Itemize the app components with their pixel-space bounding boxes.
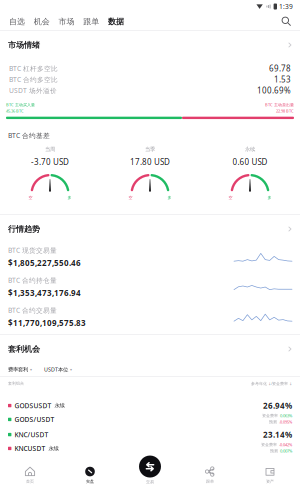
staticText: GODS/USDT (14, 415, 54, 424)
staticText: BTC 现货交易量 (8, 246, 57, 255)
staticText: BTC 主动卖出量 (265, 102, 294, 107)
button[interactable]: BTC 现货交易量 (0, 242, 300, 272)
staticText: 市场情绪 (8, 40, 40, 50)
staticText: 当周 (45, 146, 55, 152)
staticText: 实盘 (86, 479, 94, 484)
staticText: BTC 杠杆多空比 (9, 64, 58, 73)
staticText: $1,353,473,176.94 (8, 288, 81, 298)
staticText: -3.70 USD (31, 156, 69, 167)
staticText: 预测 (269, 419, 277, 424)
button[interactable]: 费率套利 (8, 363, 32, 376)
button[interactable]: 市场情绪 (0, 38, 300, 52)
staticText: 资金费率 (262, 413, 278, 418)
button[interactable]: 套利机会 (0, 342, 300, 356)
staticText: KNC/USDT (14, 430, 48, 439)
button[interactable]: 首页 (0, 462, 60, 488)
staticText: GODSUSDT (14, 401, 51, 410)
button[interactable]: 数据 (104, 13, 128, 30)
staticText: 0.063% (280, 413, 292, 418)
staticText: ▾ (70, 367, 72, 372)
button[interactable]: 资产 (240, 462, 300, 488)
staticText: 参考年化 ↓/资金费率 ↓ (251, 381, 292, 386)
button[interactable]: 跟单 (79, 13, 104, 30)
staticText: 多 (267, 195, 271, 200)
staticText: $1,805,227,550.46 (8, 258, 81, 268)
staticText: KNCUSDT (14, 444, 45, 453)
staticText: 数据 (108, 17, 124, 26)
button[interactable]: 机会 (29, 13, 54, 30)
button[interactable]: BTC 合约持仓量 (0, 272, 300, 302)
staticText: 交易 (146, 479, 154, 484)
button[interactable]: 跟单 (180, 462, 240, 488)
button[interactable]: 自选 (4, 13, 29, 30)
staticText: 空 (228, 195, 232, 200)
staticText: 多 (167, 195, 171, 200)
staticText: -0.042% (279, 442, 292, 447)
staticText: 26.94% (263, 400, 292, 411)
button[interactable]: USDT本位 (32, 363, 72, 376)
staticText: 空 (28, 195, 32, 200)
button[interactable]: BTC 合约交易量 (0, 302, 300, 332)
staticText: USDT 场外溢价 (9, 86, 57, 95)
staticText: 套利组合 (8, 381, 24, 386)
staticText: 0.007% (280, 448, 292, 454)
staticText: 22.98 BTC (276, 108, 294, 114)
staticText: BTC 合约基差 (8, 131, 50, 140)
button[interactable]: 交易 (120, 462, 180, 488)
staticText: 永续 (245, 146, 255, 152)
staticText: 跟单 (206, 479, 214, 484)
button[interactable]: Search (278, 13, 295, 30)
staticText: 当季 (145, 146, 155, 152)
staticText: 0.60 USD (232, 156, 267, 167)
staticText: 1.53 (274, 74, 291, 85)
staticText: BTC 主动买入量 (6, 102, 35, 107)
button[interactable]: 实盘 (60, 462, 120, 488)
staticText: 69.78 (269, 63, 291, 74)
staticText: 自选 (9, 17, 25, 26)
staticText: -0.095% (279, 419, 292, 425)
staticText: 费率套利 (8, 366, 28, 373)
staticText: 资金费率 (261, 442, 277, 447)
staticText: 17.80 USD (130, 156, 170, 167)
staticText: 市场 (58, 17, 74, 26)
staticText: 1:39 (279, 2, 293, 11)
staticText: 空 (128, 195, 132, 200)
staticText: 永续 (48, 445, 58, 452)
staticText: 多 (67, 195, 71, 200)
button[interactable]: 市场 (54, 13, 79, 30)
staticText: 23.14% (263, 429, 292, 440)
staticText: 行情趋势 (8, 224, 40, 234)
button[interactable]: KNC/USDT (0, 427, 300, 456)
staticText: 45.36 BTC (6, 108, 24, 114)
staticText: 永续 (54, 402, 64, 409)
button[interactable]: 行情趋势 (0, 222, 300, 236)
staticText: BTC 合约多空比 (9, 75, 58, 84)
staticText: 预测 (270, 448, 278, 453)
staticText: 跟单 (83, 17, 99, 26)
staticText: 资产 (266, 479, 274, 484)
staticText: 套利机会 (8, 344, 40, 354)
staticText: 首页 (26, 479, 34, 484)
staticText: 机会 (34, 17, 50, 26)
staticText: BTC 合约交易量 (8, 306, 57, 315)
staticText: USDT本位 (44, 366, 68, 373)
button[interactable]: GODSUSDT (0, 398, 300, 427)
staticText: BTC 合约持仓量 (8, 276, 57, 285)
staticText: 100.69% (257, 85, 291, 96)
staticText: $11,770,109,575.83 (8, 318, 86, 328)
staticText: ▾ (30, 367, 32, 372)
